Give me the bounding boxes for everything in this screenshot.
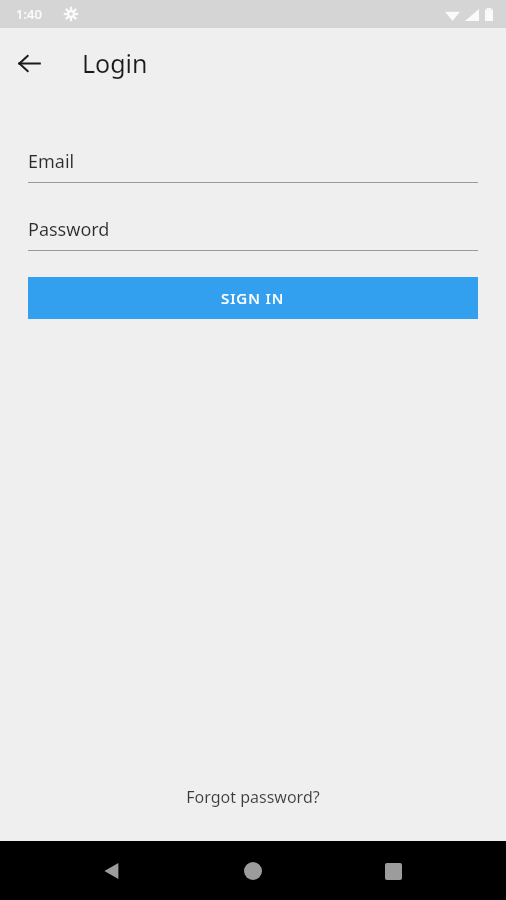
staticText: Login: [82, 46, 148, 80]
staticText: 1:40: [16, 5, 42, 23]
button[interactable]: Home: [225, 843, 281, 899]
staticText: Password: [28, 217, 110, 242]
button[interactable]: SIGN IN: [28, 277, 478, 319]
button[interactable]: Back: [84, 843, 140, 899]
button[interactable]: Forgot password?: [174, 780, 332, 814]
staticText: Forgot password?: [186, 786, 320, 808]
button[interactable]: Back: [8, 42, 50, 84]
button[interactable]: Password: [28, 217, 478, 251]
button[interactable]: Email: [28, 149, 478, 183]
button[interactable]: Recent apps: [365, 843, 421, 899]
staticText: Email: [28, 149, 75, 174]
staticText: SIGN IN: [221, 288, 285, 308]
